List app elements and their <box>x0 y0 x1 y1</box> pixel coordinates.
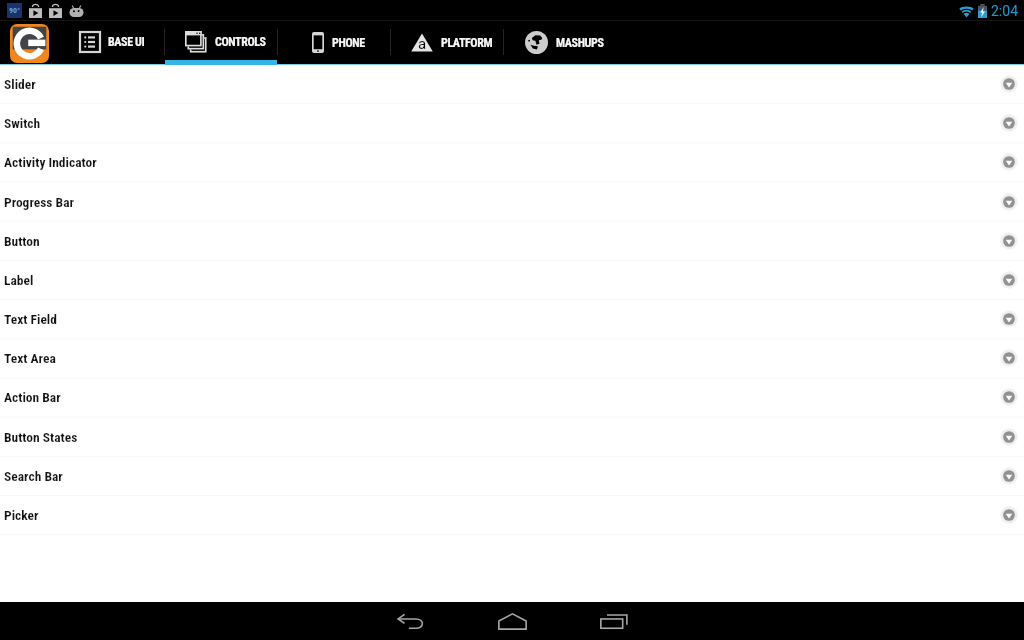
staticText: 90° <box>9 6 21 15</box>
button[interactable]: a <box>390 21 503 65</box>
staticText: Switch <box>4 115 41 131</box>
button[interactable]: Progress Bar <box>0 183 1024 222</box>
staticText: Activity Indicator <box>4 154 97 170</box>
staticText: Text Field <box>4 311 57 327</box>
button[interactable]: Button States <box>0 418 1024 457</box>
button[interactable]: PHONE <box>277 21 390 65</box>
button[interactable]: Button <box>0 222 1024 261</box>
button[interactable]: Expand Button <box>997 230 1021 254</box>
button[interactable]: Picker <box>0 496 1024 535</box>
button[interactable]: Slider <box>0 65 1024 104</box>
staticText: a <box>418 35 427 53</box>
button[interactable]: Text Field <box>0 300 1024 339</box>
button[interactable]: Home <box>461 602 563 640</box>
button[interactable]: MASHUPS <box>503 21 616 65</box>
button[interactable]: Search Bar <box>0 457 1024 496</box>
button[interactable]: Action Bar <box>0 378 1024 417</box>
staticText: 2:04 <box>991 3 1018 19</box>
button[interactable]: Expand Activity Indicator <box>997 151 1021 175</box>
button[interactable]: CONTROLS <box>164 21 277 65</box>
button[interactable]: Expand Text Field <box>997 308 1021 332</box>
button[interactable]: App logo <box>10 24 49 63</box>
button[interactable]: Expand Slider <box>997 73 1021 97</box>
button[interactable]: Switch <box>0 104 1024 143</box>
staticText: Button <box>4 233 40 249</box>
button[interactable]: Expand Progress Bar <box>997 191 1021 215</box>
button[interactable]: Recent apps <box>563 602 665 640</box>
button[interactable]: BASE UI <box>51 21 164 65</box>
button[interactable]: Expand Switch <box>997 112 1021 136</box>
button[interactable]: Expand Picker <box>997 504 1021 528</box>
button[interactable]: Text Area <box>0 339 1024 378</box>
button[interactable]: Back <box>359 602 461 640</box>
staticText: CONTROLS <box>215 35 266 49</box>
staticText: Action Bar <box>4 389 61 405</box>
staticText: PLATFORM <box>441 36 493 50</box>
staticText: Progress Bar <box>4 194 75 210</box>
staticText: Label <box>4 272 34 288</box>
staticText: MASHUPS <box>556 36 604 50</box>
staticText: Text Area <box>4 350 56 366</box>
staticText: Search Bar <box>4 468 63 484</box>
button[interactable]: Label <box>0 261 1024 300</box>
button[interactable]: Expand Text Area <box>997 347 1021 371</box>
staticText: BASE UI <box>108 35 145 49</box>
button[interactable]: Expand Action Bar <box>997 386 1021 410</box>
button[interactable]: Expand Label <box>997 269 1021 293</box>
staticText: Slider <box>4 76 36 92</box>
button[interactable]: Expand Search Bar <box>997 465 1021 489</box>
button[interactable]: Expand Button States <box>997 426 1021 450</box>
staticText: Picker <box>4 507 39 523</box>
staticText: Button States <box>4 429 78 445</box>
button[interactable]: Activity Indicator <box>0 143 1024 182</box>
staticText: PHONE <box>332 36 365 50</box>
